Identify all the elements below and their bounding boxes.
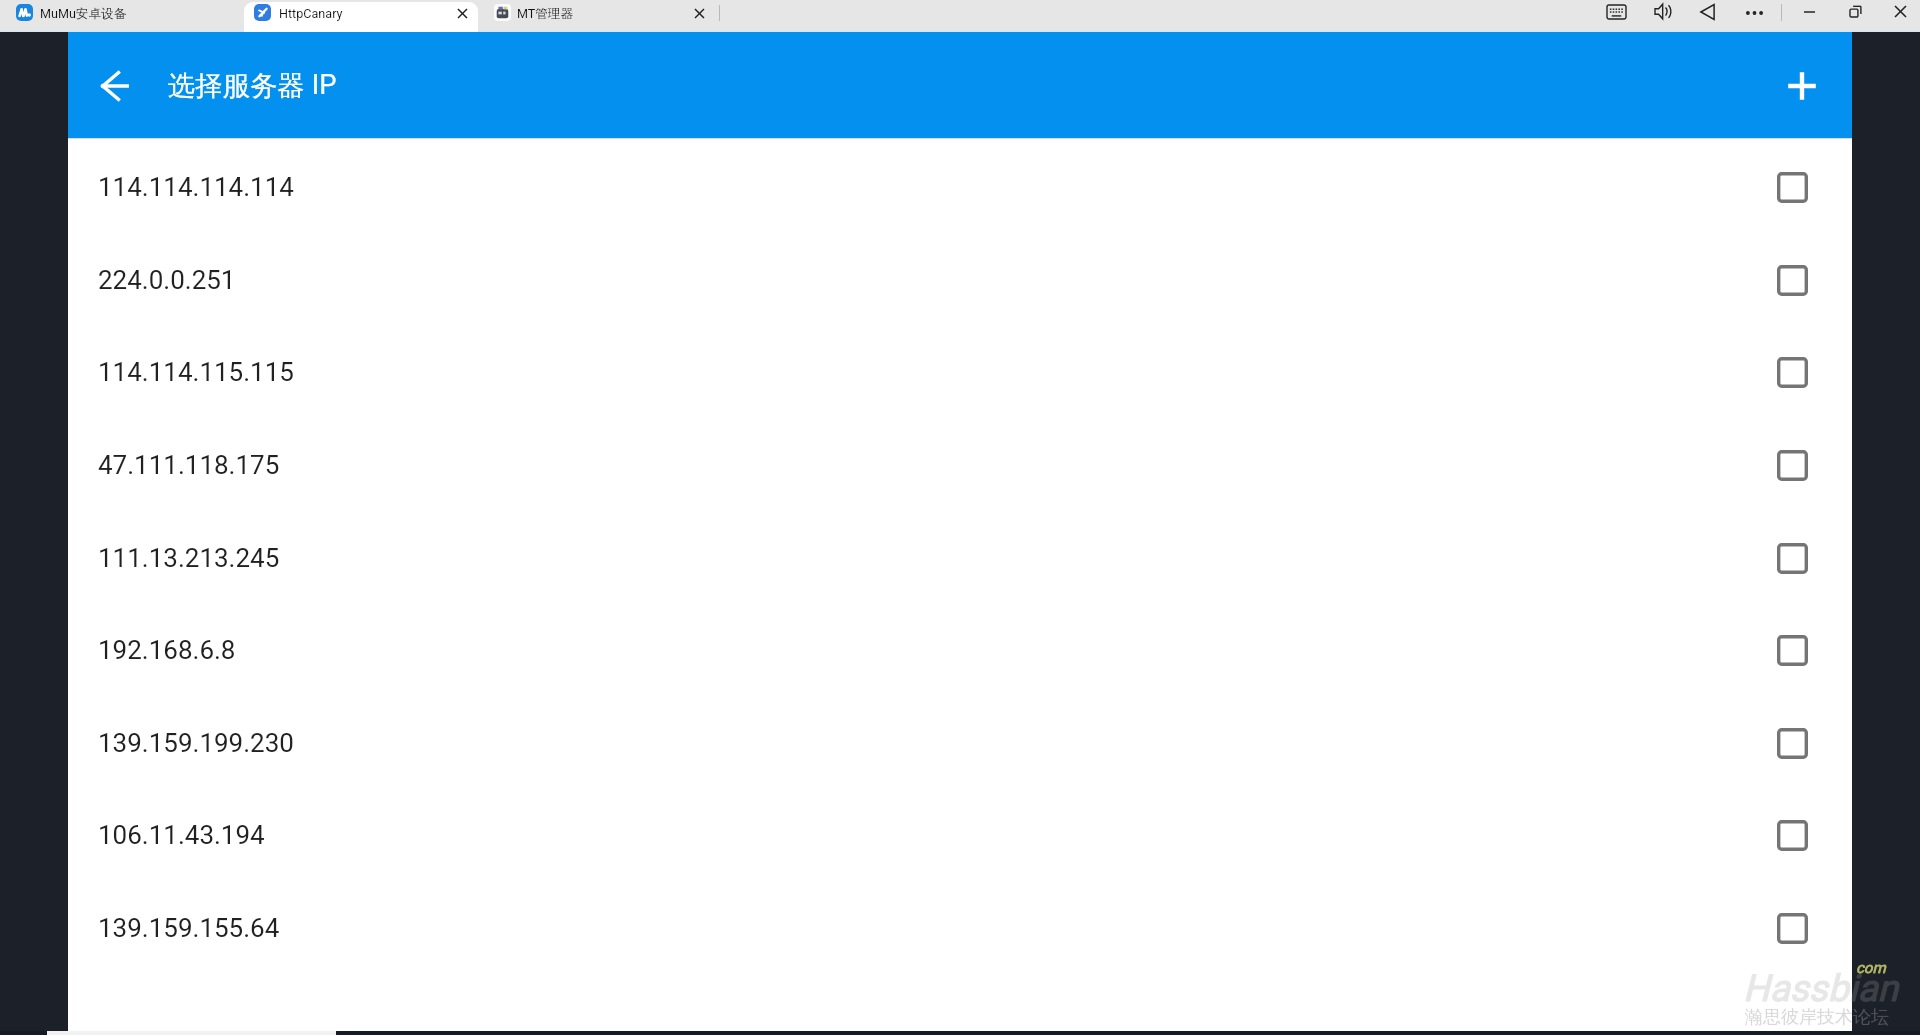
button[interactable]: Select 114.114.114.114 <box>1761 156 1823 218</box>
staticText: 106.11.43.194 <box>98 820 265 850</box>
button[interactable]: Keyboard <box>1596 0 1636 26</box>
staticText: 选择服务器 <box>168 69 305 103</box>
button[interactable]: Back <box>89 60 141 112</box>
button[interactable]: 139.159.155.64 <box>68 881 1852 974</box>
button[interactable]: 114.114.114.114 <box>68 140 1852 233</box>
button[interactable]: Select 106.11.43.194 <box>1761 804 1823 866</box>
button[interactable]: Select 224.0.0.251 <box>1761 249 1823 311</box>
button[interactable]: Select 192.168.6.8 <box>1761 619 1823 681</box>
button[interactable]: Maximize <box>1833 0 1878 26</box>
button[interactable]: 224.0.0.251 <box>68 233 1852 326</box>
staticText: com <box>1856 959 1886 977</box>
staticText: 瀚思彼岸技术论坛 <box>1745 1006 1889 1029</box>
button[interactable]: More options <box>1734 0 1774 27</box>
staticText: 139.159.155.64 <box>98 913 280 943</box>
button[interactable]: Select 139.159.155.64 <box>1761 897 1823 959</box>
button[interactable]: Select 139.159.199.230 <box>1761 712 1823 774</box>
button[interactable]: 139.159.199.230 <box>68 696 1852 789</box>
staticText: 111.13.213.245 <box>98 543 280 573</box>
button[interactable] <box>244 2 478 32</box>
button[interactable]: 106.11.43.194 <box>68 788 1852 881</box>
button[interactable]: 47.111.118.175 <box>68 418 1852 511</box>
staticText: 192.168.6.8 <box>98 635 236 665</box>
staticText: 47.111.118.175 <box>98 450 280 480</box>
button[interactable]: Select 114.114.115.115 <box>1761 341 1823 403</box>
button[interactable]: Minimize <box>1787 0 1832 26</box>
staticText: 139.159.199.230 <box>98 728 294 758</box>
button[interactable]: Close <box>1878 0 1920 26</box>
button[interactable]: Add <box>1776 60 1828 112</box>
button[interactable]: 111.13.213.245 <box>68 511 1852 604</box>
button[interactable]: Close tab <box>688 2 710 24</box>
staticText: HttpCanary <box>279 6 343 21</box>
button[interactable]: 192.168.6.8 <box>68 603 1852 696</box>
button[interactable]: Volume <box>1642 0 1682 26</box>
staticText: MuMu安卓设备 <box>40 6 127 22</box>
button[interactable]: Select 47.111.118.175 <box>1761 434 1823 496</box>
staticText: IP <box>305 69 337 101</box>
staticText: 114.114.114.114 <box>98 172 294 202</box>
button[interactable]: Select 111.13.213.245 <box>1761 527 1823 589</box>
staticText: Hassbian <box>1743 967 1899 1010</box>
button[interactable]: 114.114.115.115 <box>68 325 1852 418</box>
staticText: 224.0.0.251 <box>98 265 236 295</box>
button[interactable]: Close tab <box>451 2 473 24</box>
staticText: 114.114.115.115 <box>98 357 294 387</box>
staticText: MT管理器 <box>517 6 574 22</box>
button[interactable]: Back <box>1687 0 1727 26</box>
